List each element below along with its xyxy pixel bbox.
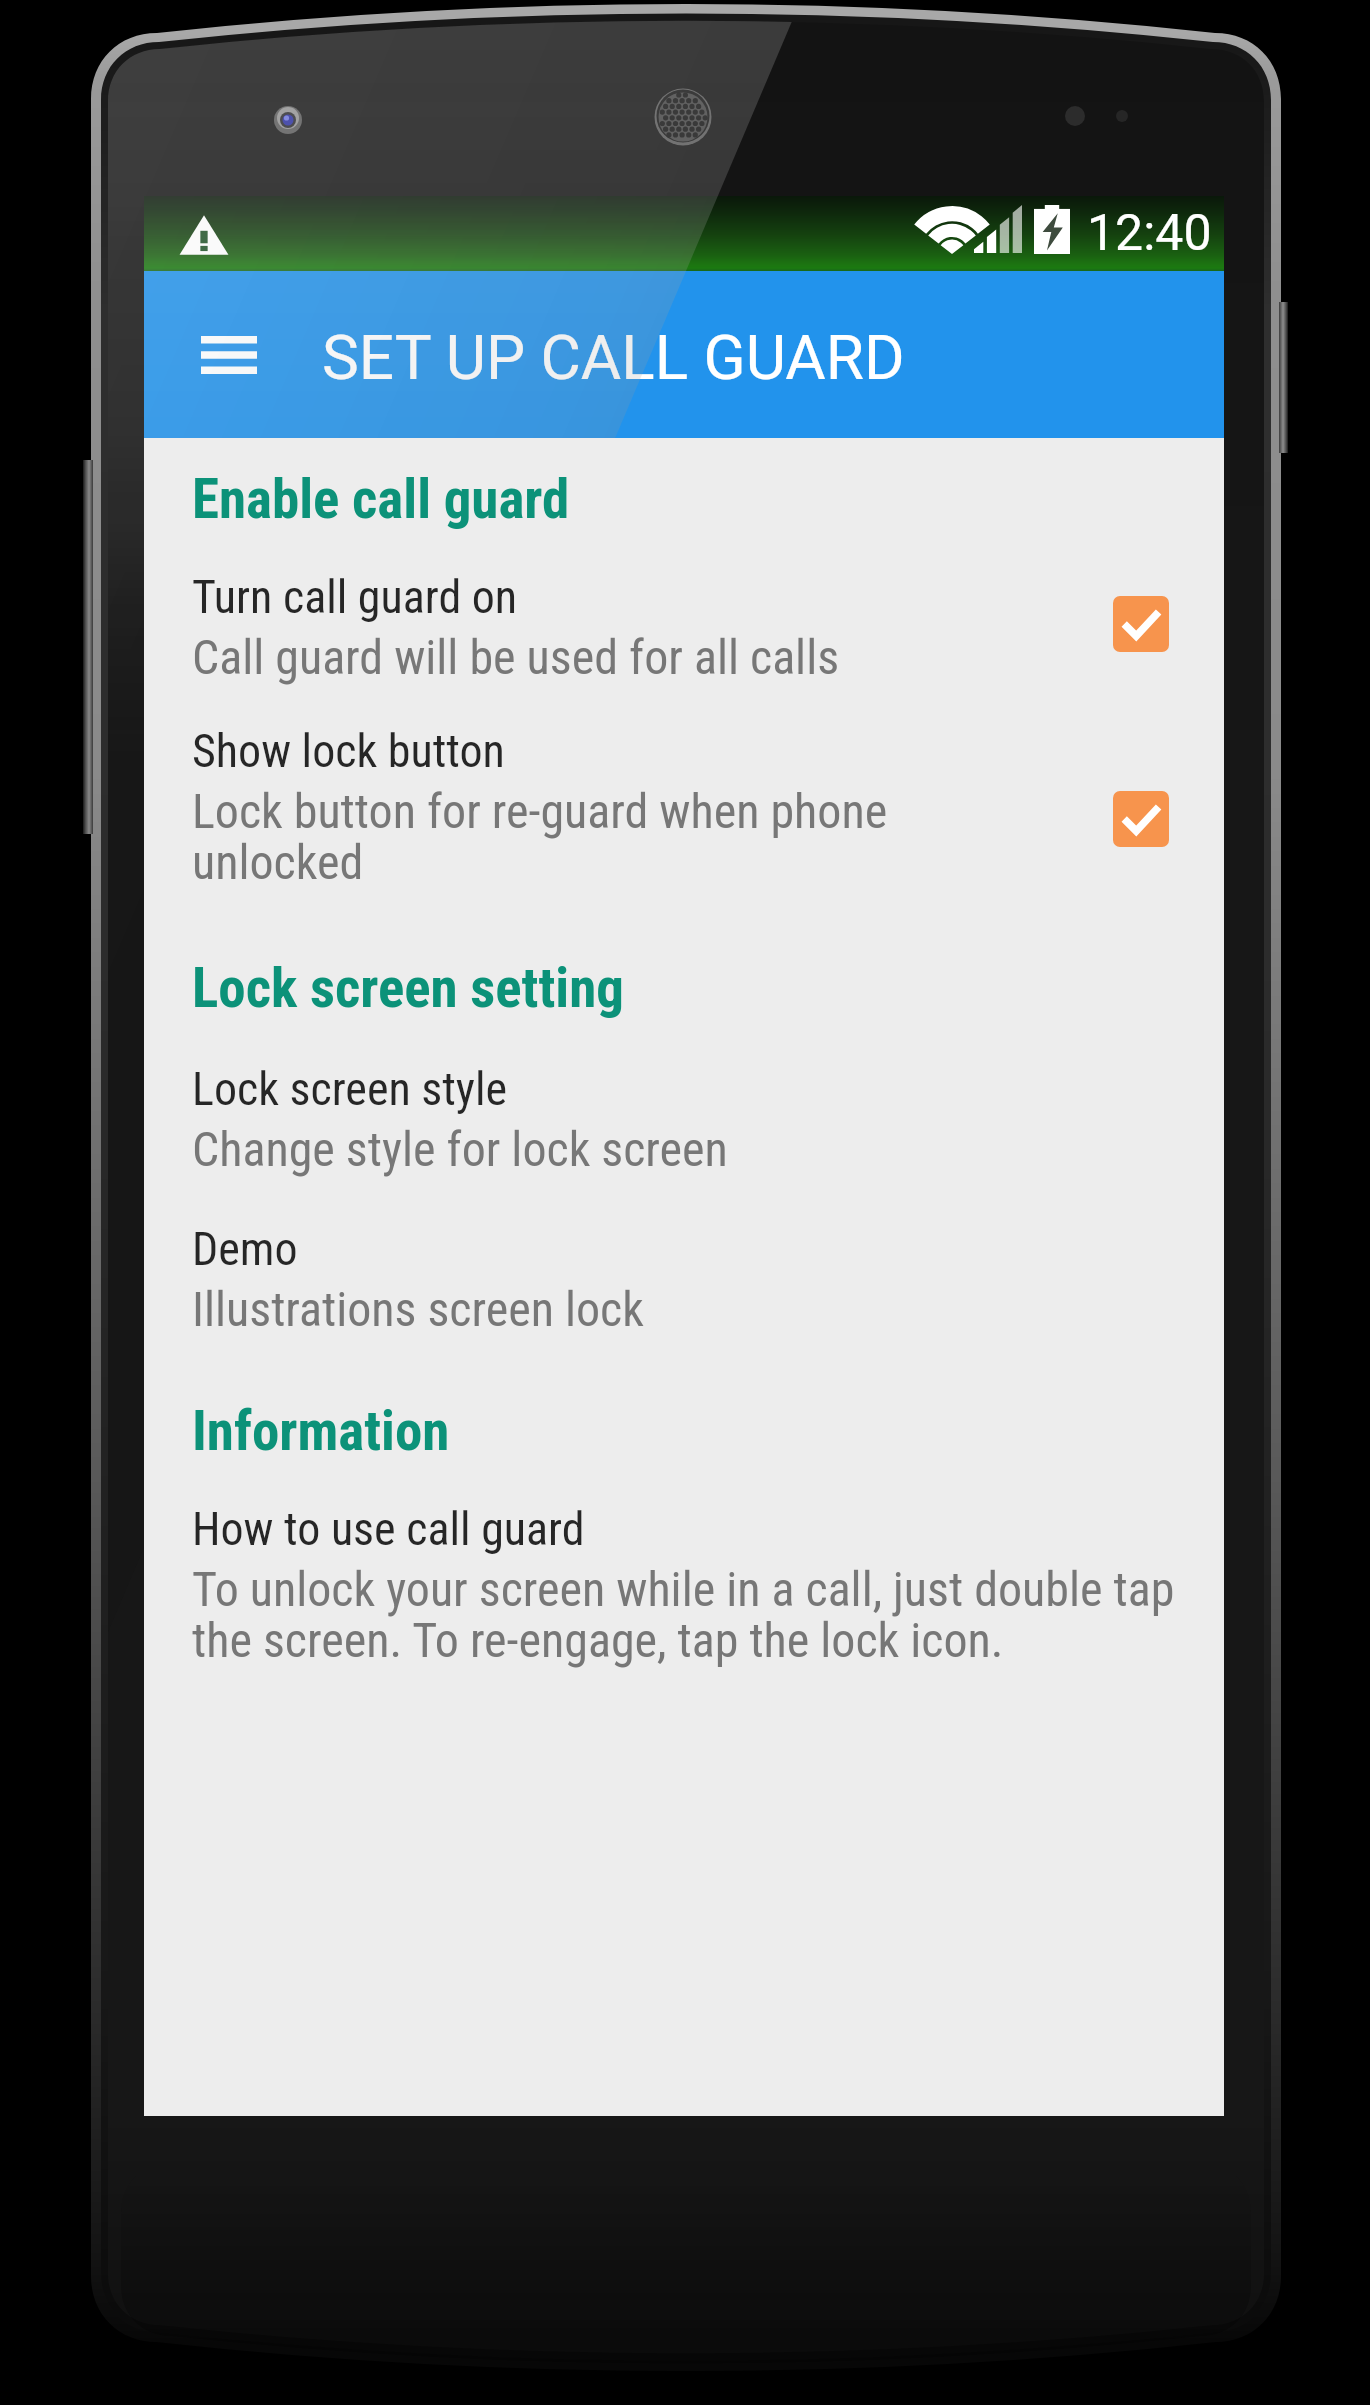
staticText: Lock screen setting <box>192 956 624 1020</box>
staticText: Change style for lock screen <box>192 1121 1192 1177</box>
button[interactable]: Show lock button <box>144 715 1224 875</box>
staticText: SET UP CALL GUARD <box>322 321 905 394</box>
staticText: Demo <box>192 1222 1192 1276</box>
staticText: Illustrations screen lock <box>192 1281 1192 1337</box>
staticText: Turn call guard on <box>192 570 1052 624</box>
button[interactable]: Lock screen style <box>144 1053 1224 1213</box>
button[interactable]: Turn call guard on checkbox <box>1113 596 1169 652</box>
staticText: Lock button for re-guard when phone unlo… <box>192 783 1052 891</box>
staticText: To unlock your screen while in a call, j… <box>192 1561 1192 1669</box>
button[interactable]: Show lock button checkbox <box>1113 791 1169 847</box>
button[interactable]: Turn call guard on <box>144 561 1224 721</box>
staticText: How to use call guard <box>192 1502 1192 1556</box>
staticText: Information <box>192 1399 450 1463</box>
staticText: Lock screen style <box>192 1062 1192 1116</box>
button[interactable]: Open navigation drawer <box>174 271 284 438</box>
staticText: Enable call guard <box>192 467 570 531</box>
staticText: Show lock button <box>192 724 1052 778</box>
button[interactable]: How to use call guard <box>144 1493 1224 1653</box>
button[interactable]: Demo <box>144 1213 1224 1373</box>
staticText: Call guard will be used for all calls <box>192 629 1052 685</box>
staticText: 12:40 <box>1087 204 1212 263</box>
